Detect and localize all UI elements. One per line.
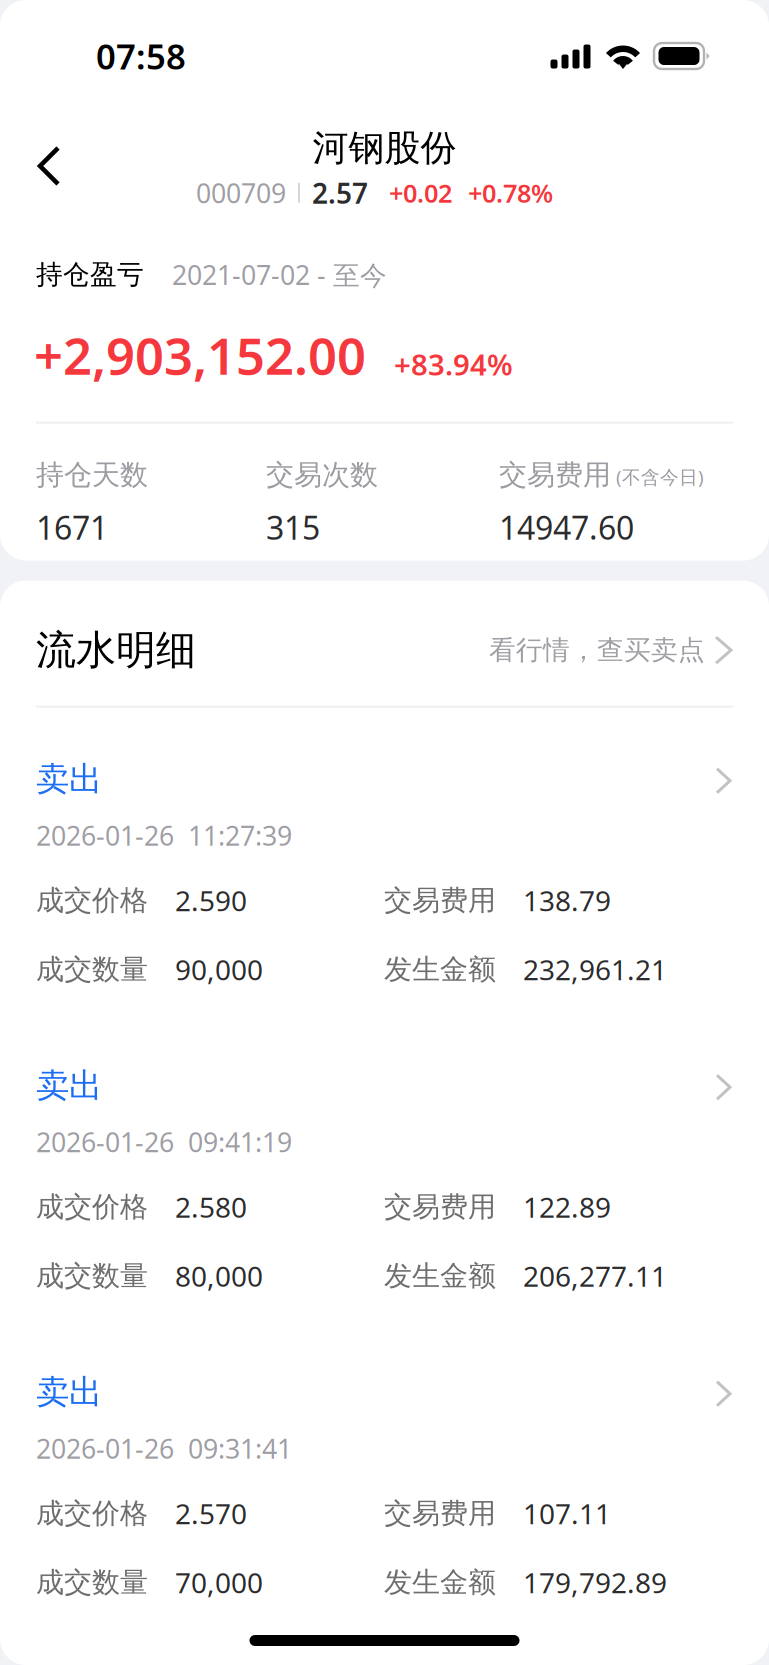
button[interactable]: 卖出: [0, 1043, 769, 1350]
staticText: 持仓盈亏: [36, 258, 144, 291]
staticText: 发生金额: [384, 1565, 496, 1599]
staticText: 07:58: [96, 33, 186, 79]
staticText: 000709: [196, 175, 286, 210]
staticText: 2.57: [312, 174, 368, 211]
staticText: 成交价格: [36, 1190, 148, 1224]
staticText: 卖出: [36, 759, 102, 800]
staticText: 122.89: [523, 1188, 611, 1225]
staticText: 2.580: [175, 1188, 247, 1225]
staticText: 179,792.89: [523, 1564, 667, 1601]
button[interactable]: 卖出: [0, 737, 769, 1043]
staticText: 2026-01-26 09:31:41: [36, 1431, 292, 1466]
staticText: 成交数量: [36, 1565, 148, 1599]
staticText: 90,000: [175, 951, 263, 988]
staticText: 315: [266, 506, 320, 549]
staticText: 流水明细: [36, 626, 196, 675]
staticText: +0.78%: [468, 176, 553, 210]
staticText: 2.590: [175, 882, 247, 919]
staticText: 2021-07-02 - 至今: [172, 257, 387, 292]
staticText: 持仓天数: [36, 458, 148, 492]
button[interactable]: Back: [17, 133, 83, 199]
staticText: 206,277.11: [523, 1257, 667, 1294]
staticText: +2,903,152.00: [34, 321, 366, 389]
staticText: 交易次数: [266, 458, 378, 492]
staticText: 成交价格: [36, 883, 148, 917]
staticText: 交易费用: [384, 1190, 496, 1224]
staticText: 成交数量: [36, 1259, 148, 1293]
staticText: 交易费用: [384, 883, 496, 917]
button[interactable]: 卖出: [0, 1350, 769, 1656]
staticText: (不含今日): [616, 464, 704, 489]
staticText: 1671: [36, 506, 108, 549]
staticText: +83.94%: [394, 345, 513, 384]
staticText: 卖出: [36, 1065, 102, 1106]
staticText: 232,961.21: [523, 951, 667, 988]
staticText: 发生金额: [384, 952, 496, 986]
staticText: 14947.60: [499, 506, 634, 549]
staticText: 交易费用: [499, 458, 611, 492]
staticText: 看行情，查买卖点: [489, 634, 705, 667]
staticText: 2.570: [175, 1495, 247, 1532]
staticText: 107.11: [523, 1495, 611, 1532]
staticText: 70,000: [175, 1564, 263, 1601]
staticText: 80,000: [175, 1257, 263, 1294]
staticText: 河钢股份: [312, 126, 456, 170]
staticText: 卖出: [36, 1372, 102, 1413]
staticText: +0.02: [389, 176, 452, 210]
staticText: 成交价格: [36, 1496, 148, 1530]
staticText: 2026-01-26 09:41:19: [36, 1124, 292, 1160]
staticText: 成交数量: [36, 952, 148, 986]
staticText: 交易费用: [384, 1496, 496, 1530]
staticText: 138.79: [523, 882, 611, 919]
button[interactable]: 看行情，查买卖点: [489, 634, 733, 667]
staticText: 发生金额: [384, 1259, 496, 1293]
staticText: 2026-01-26 11:27:39: [36, 818, 292, 853]
